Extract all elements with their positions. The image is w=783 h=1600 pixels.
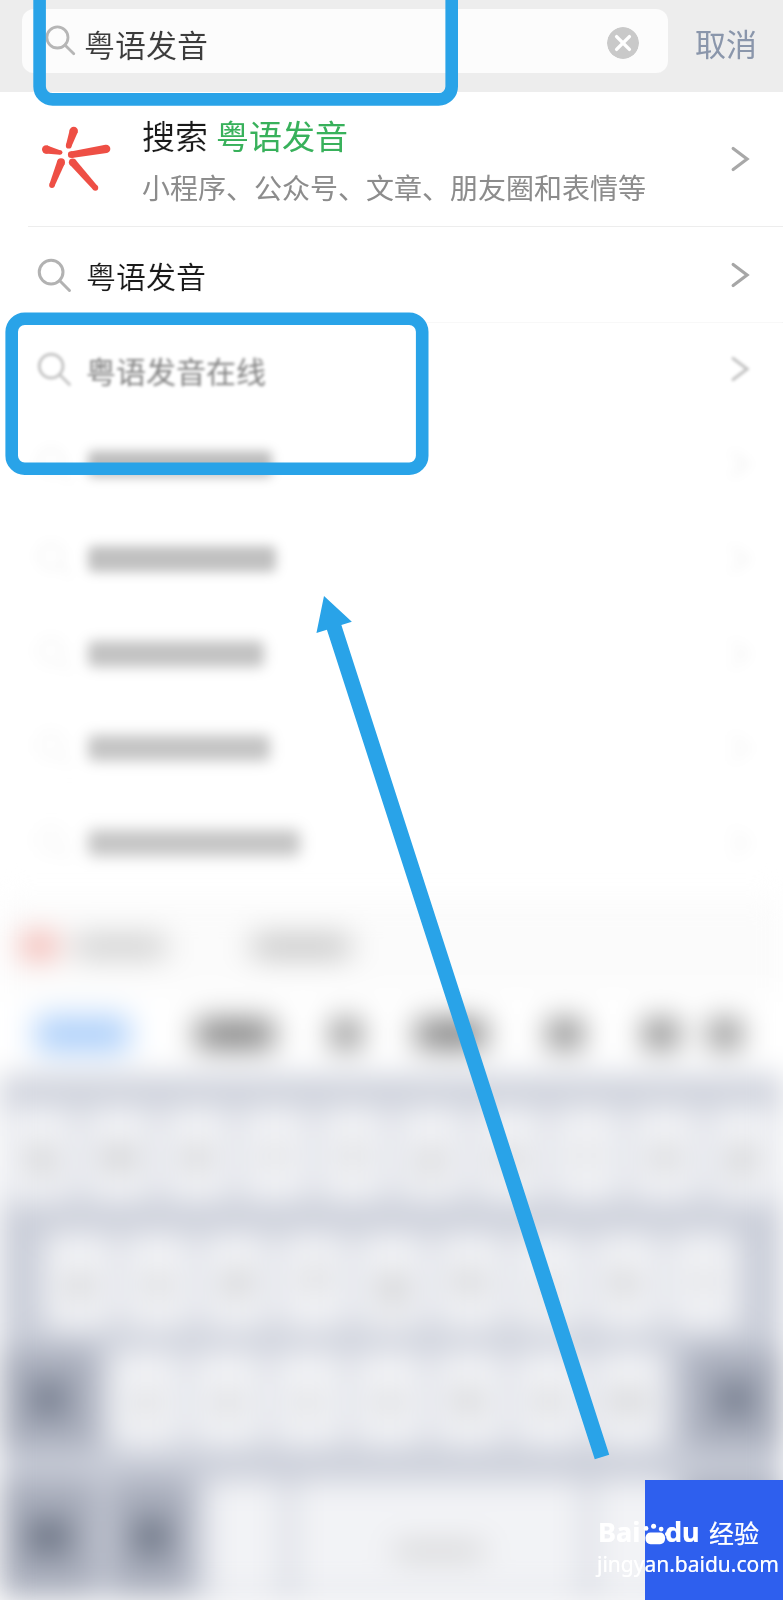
staticText: j [543,1257,553,1306]
staticText: u [498,1130,521,1179]
staticText: 粤语发音在线 [86,348,266,391]
staticText: jingyan.baidu.com [597,1550,779,1579]
staticText: du [665,1513,700,1550]
staticText: p [732,1130,755,1179]
staticText: 经验 [709,1514,760,1550]
button[interactable] [0,606,783,701]
button[interactable] [0,511,783,606]
staticText: 粤语发音 [84,21,208,66]
button[interactable]: 粤语发音 [22,9,668,73]
button[interactable]: 粤语发音 [0,227,783,322]
staticText: 搜索 [142,111,216,159]
staticText: 小程序、公众号、文章、朋友圈和表情等 [142,167,647,208]
button[interactable] [0,416,783,511]
staticText: q [29,1130,52,1179]
button[interactable]: 粤语发音在线 [0,322,783,416]
staticText: w [105,1130,134,1179]
button[interactable] [0,700,783,795]
staticText: Bai [598,1513,641,1550]
staticText: 取消 [695,20,757,65]
staticText: 粤语发音 [216,111,348,159]
button[interactable] [0,795,783,890]
button[interactable]: Clear text [607,27,639,59]
staticText: g [381,1257,404,1306]
button[interactable]: 取消 [676,0,776,92]
staticText: 粤语发音 [86,253,206,296]
button[interactable]: 搜索 [0,92,783,226]
